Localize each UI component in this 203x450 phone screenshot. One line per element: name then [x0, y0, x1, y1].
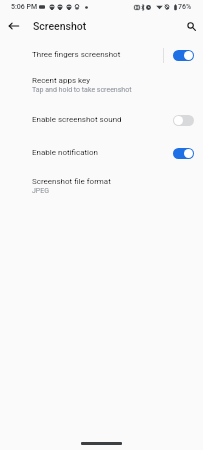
button[interactable]: Enable screenshot sound [0, 107, 203, 133]
staticText: JPEG [32, 187, 50, 195]
button[interactable]: Screenshot file format [0, 177, 203, 195]
button[interactable]: Enable notification [0, 140, 203, 166]
staticText: 5:06 PM [11, 3, 38, 11]
staticText: Screenshot file format [32, 177, 111, 186]
staticText: Enable screenshot sound [32, 115, 122, 124]
button[interactable] [173, 115, 194, 126]
staticText: Recent apps key [32, 76, 91, 85]
staticText: 76% [178, 3, 192, 11]
button[interactable] [173, 148, 194, 159]
button[interactable]: Three fingers screenshot [0, 42, 203, 68]
staticText: Enable notification [32, 148, 99, 157]
button[interactable] [173, 50, 194, 61]
button[interactable]: Search [180, 15, 202, 37]
button[interactable]: Recent apps key [0, 76, 203, 94]
staticText: Three fingers screenshot [32, 50, 121, 59]
staticText: Tap and hold to take screenshot [32, 86, 132, 94]
button[interactable]: Back [3, 15, 25, 37]
staticText: Screenshot [33, 20, 87, 32]
